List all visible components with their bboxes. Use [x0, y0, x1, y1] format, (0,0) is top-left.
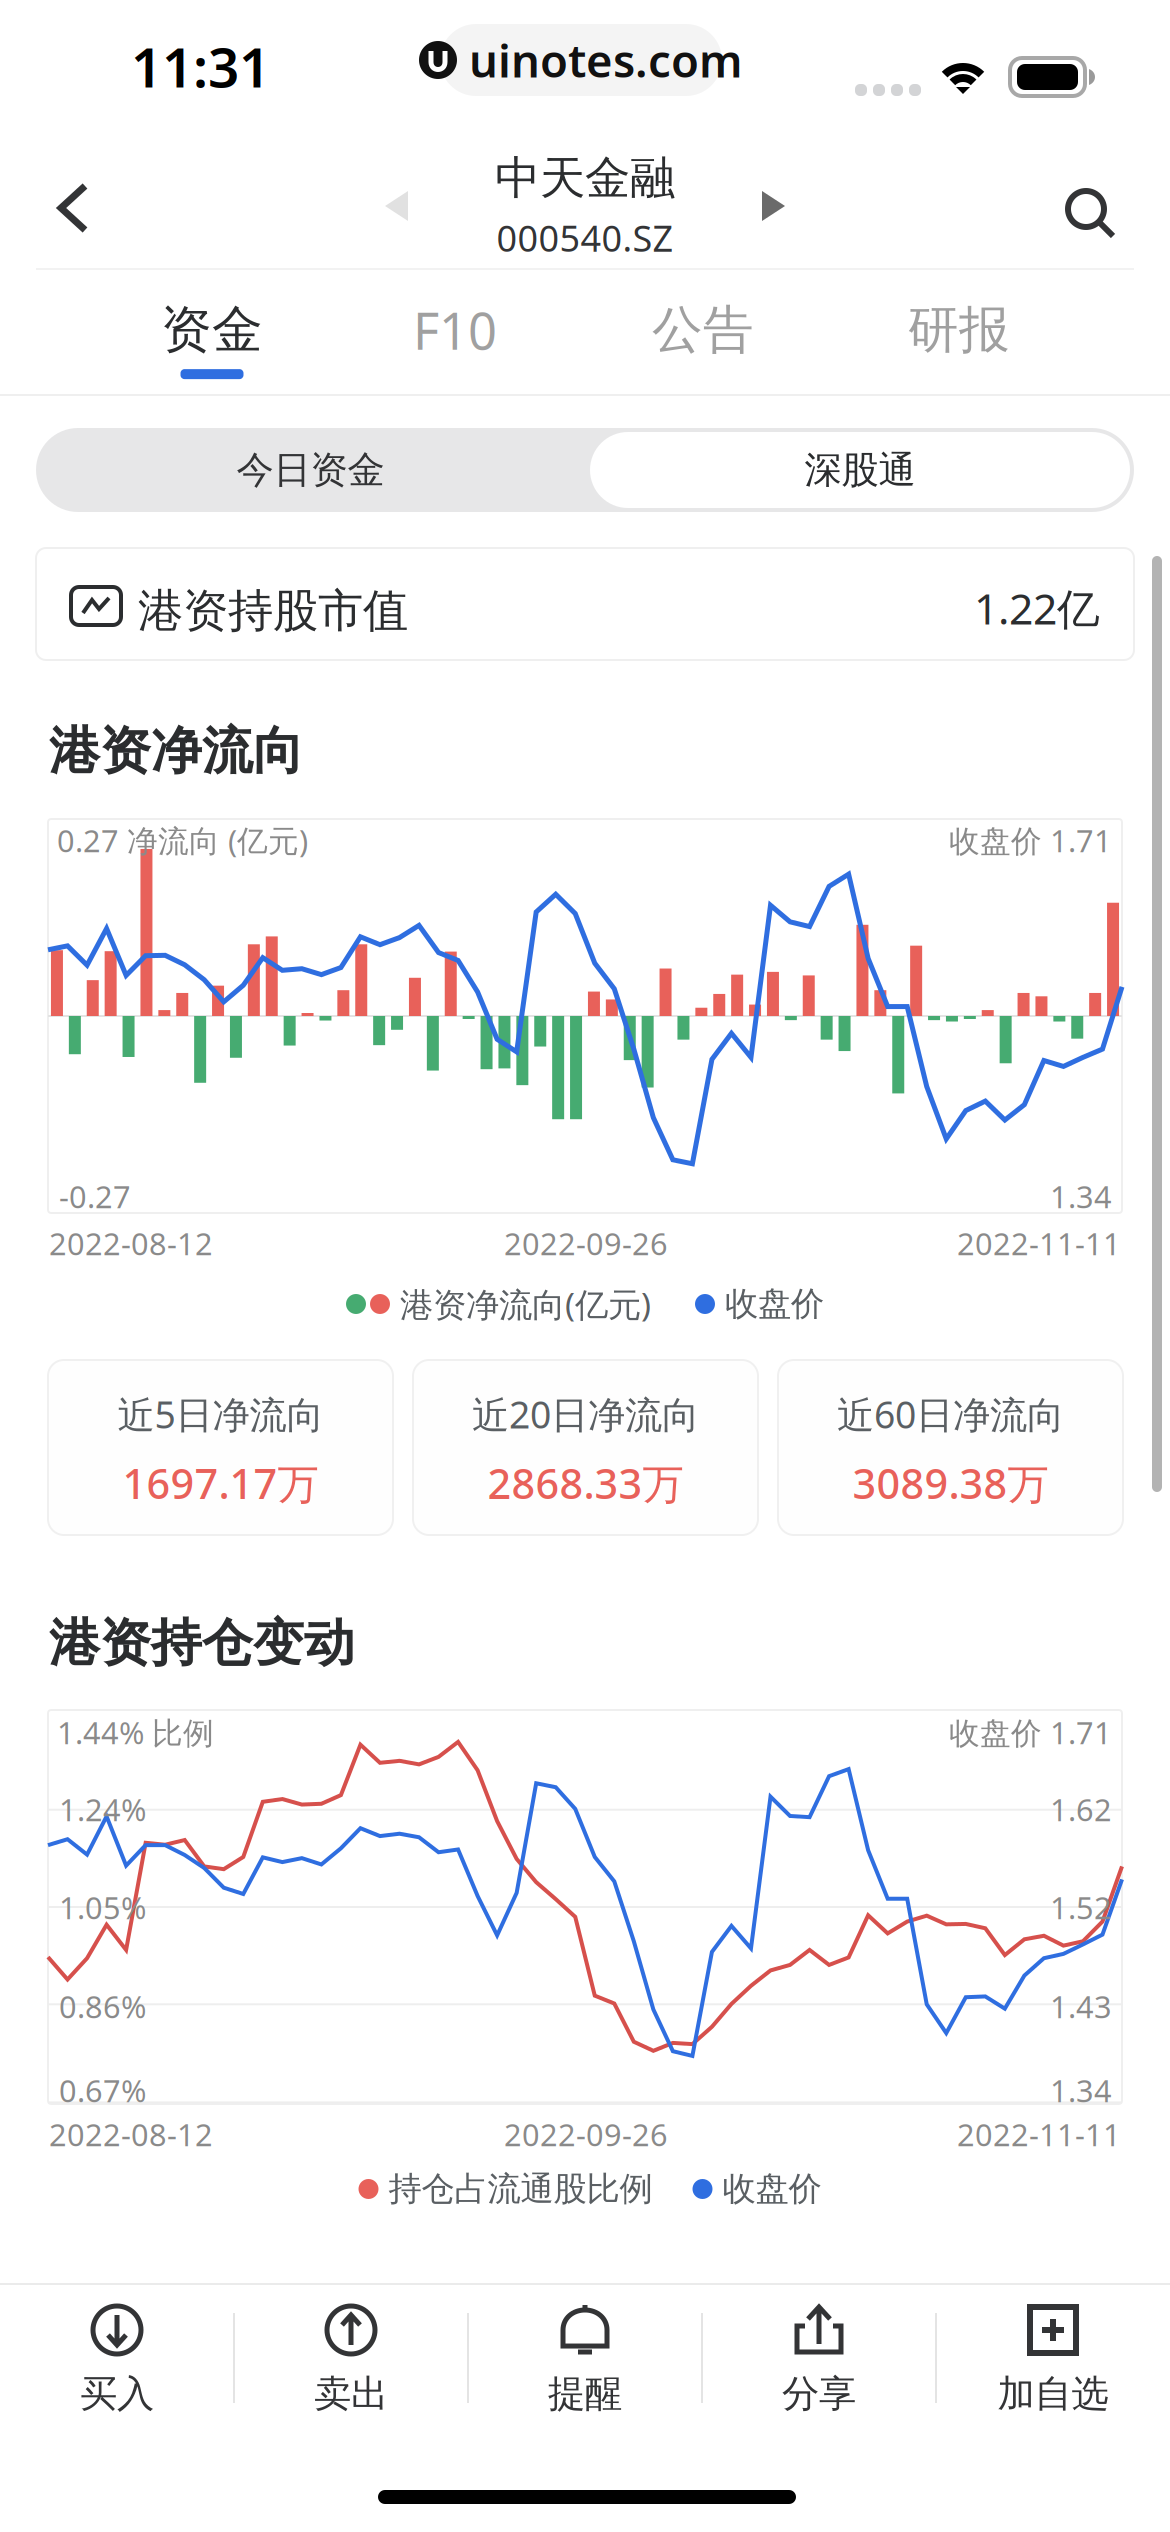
button[interactable]: 公告 — [583, 294, 823, 384]
staticText: 1.44% 比例 — [57, 1712, 214, 1753]
staticText: 收盘价 — [722, 2168, 821, 2209]
staticText: 1697.17万 — [122, 1456, 318, 1510]
staticText: 1.62 — [1050, 1789, 1112, 1830]
button[interactable]: 深股通 — [0, 0, 540, 76]
staticText: 3089.38万 — [852, 1456, 1048, 1510]
staticText: 收盘价 — [725, 1283, 824, 1324]
button[interactable]: 卖出 — [234, 2303, 468, 2425]
staticText: 公告 — [652, 299, 754, 361]
staticText: 中天金融 — [495, 150, 675, 206]
staticText: 研报 — [908, 299, 1010, 361]
button[interactable]: 研报 — [839, 294, 1079, 384]
staticText: 0.27 净流向 (亿元) — [57, 820, 308, 861]
staticText: 收盘价 1.71 — [949, 1712, 1112, 1753]
staticText: 2022-11-11 — [957, 1223, 1121, 1264]
staticText: 卖出 — [314, 2371, 388, 2417]
staticText: 深股通 — [804, 447, 915, 493]
staticText: 港资持股市值 — [138, 583, 408, 639]
staticText: 11:31 — [131, 30, 270, 103]
staticText: 1.34 — [1050, 2070, 1112, 2111]
staticText: 1.52 — [1050, 1887, 1112, 1928]
staticText: 2022-09-26 — [504, 2114, 668, 2155]
staticText: 加自选 — [997, 2371, 1108, 2417]
staticText: 2022-09-26 — [504, 1223, 668, 1264]
staticText: 1.05% — [59, 1887, 146, 1928]
staticText: 提醒 — [548, 2371, 622, 2417]
staticText: 今日资金 — [236, 447, 384, 493]
button[interactable]: 买入 — [0, 2303, 234, 2425]
button[interactable]: 提醒 — [468, 2303, 702, 2425]
staticText: 2022-08-12 — [49, 2114, 213, 2155]
button[interactable]: 加自选 — [936, 2303, 1170, 2425]
staticText: 2868.33万 — [487, 1456, 683, 1510]
staticText: 买入 — [80, 2371, 154, 2417]
staticText: 港资净流向 — [49, 720, 304, 782]
staticText: -0.27 — [59, 1176, 131, 1217]
staticText: 0.86% — [59, 1986, 146, 2027]
staticText: 1.22亿 — [974, 580, 1100, 636]
staticText: 分享 — [782, 2371, 856, 2417]
staticText: 0.67% — [59, 2070, 146, 2111]
staticText: 1.24% — [59, 1789, 146, 1830]
staticText: 1.43 — [1050, 1986, 1112, 2027]
staticText: uinotes.com — [469, 30, 743, 90]
staticText: 近60日净流向 — [837, 1389, 1064, 1439]
staticText: 资金 — [161, 299, 263, 361]
staticText: 近20日净流向 — [472, 1389, 699, 1439]
staticText: 近5日净流向 — [117, 1389, 323, 1439]
button[interactable]: 资金 — [92, 294, 332, 384]
staticText: 港资净流向(亿元) — [400, 1282, 651, 1326]
button[interactable]: 今日资金 — [0, 0, 549, 84]
button[interactable]: 分享 — [702, 2303, 936, 2425]
staticText: 000540.SZ — [496, 214, 673, 262]
staticText: 2022-08-12 — [49, 1223, 213, 1264]
staticText: F10 — [413, 296, 497, 364]
staticText: 持仓占流通股比例 — [388, 2168, 652, 2209]
button[interactable]: F10 — [335, 294, 575, 384]
staticText: 2022-11-11 — [957, 2114, 1121, 2155]
button[interactable]: 港资持股市值 — [36, 548, 1134, 660]
staticText: 港资持仓变动 — [49, 1612, 355, 1674]
staticText: 1.34 — [1050, 1176, 1112, 1217]
staticText: 收盘价 1.71 — [949, 820, 1112, 861]
